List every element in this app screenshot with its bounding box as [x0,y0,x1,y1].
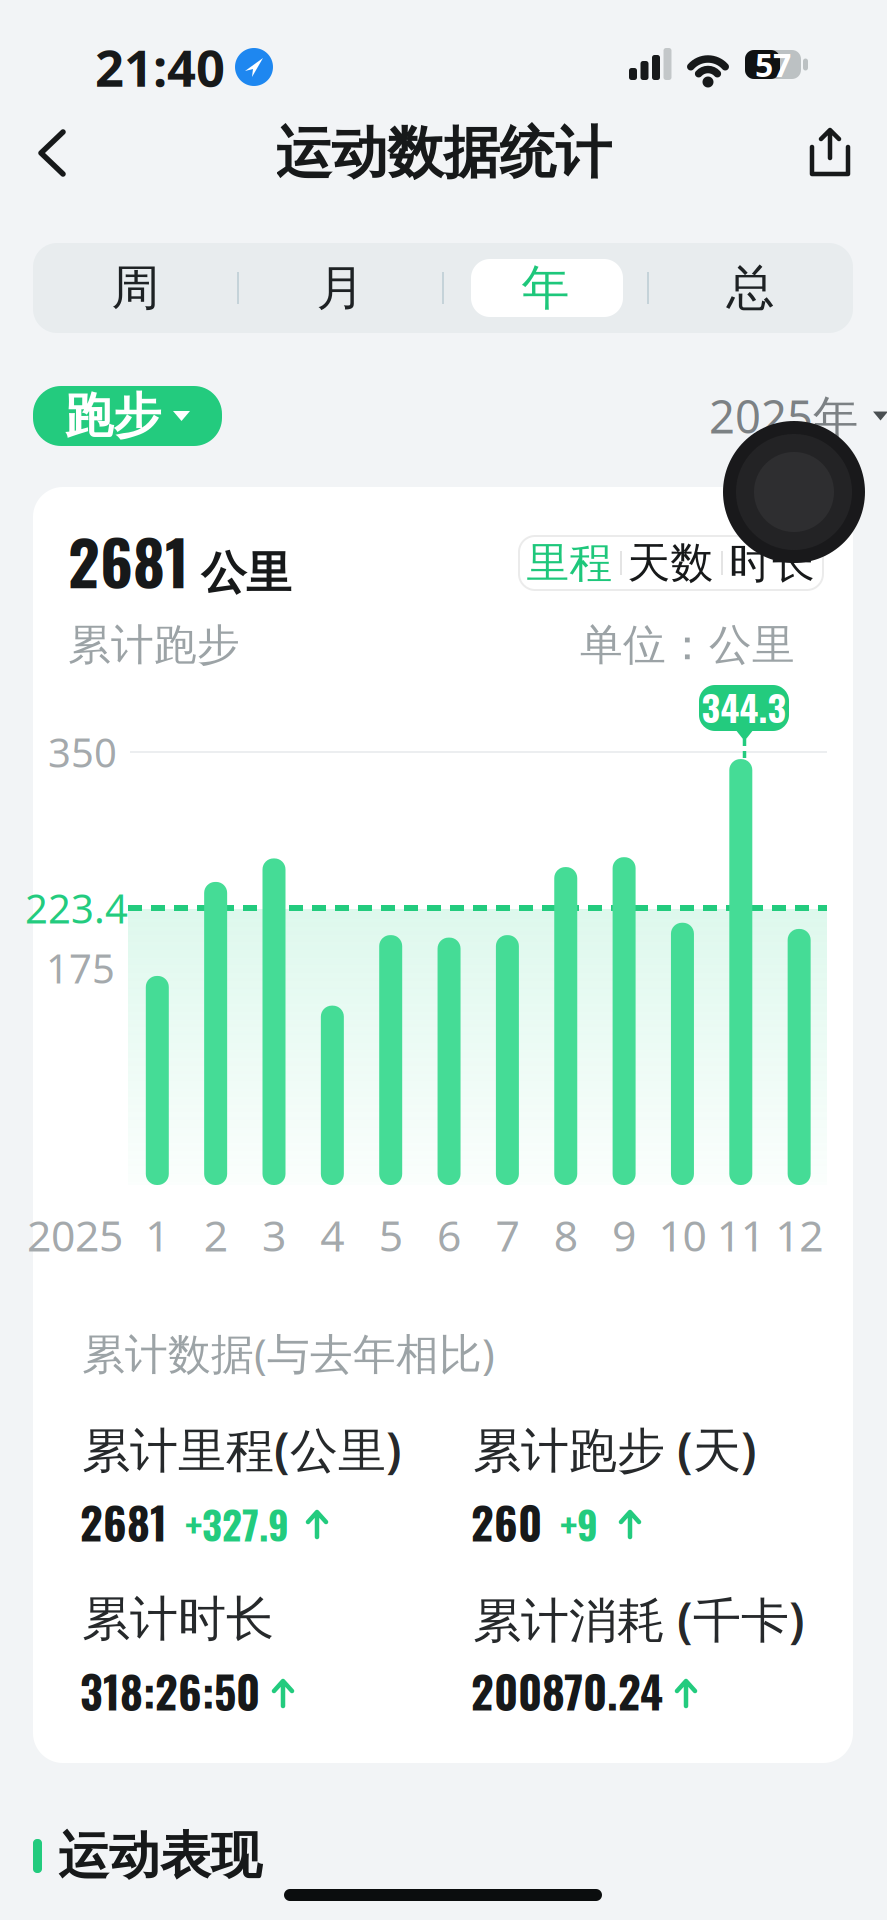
button[interactable]: 2025年 [709,386,887,446]
staticText: 运动数据统计 [275,118,611,188]
staticText: 1 [145,1206,169,1264]
staticText: 单位：公里 [580,618,795,672]
staticText: 3 [262,1206,286,1264]
staticText: 年 [521,258,569,318]
staticText: 318:26:50 [80,1658,260,1723]
staticText: 里程 [526,536,612,590]
staticText: +9 [560,1495,598,1553]
staticText: 总 [726,258,774,318]
staticText: 9 [612,1206,636,1264]
button[interactable]: 总 [648,243,853,333]
staticText: 时长 [729,536,815,590]
button[interactable]: 月 [238,243,443,333]
staticText: 350 [48,725,117,779]
staticText: 公里 [201,544,291,602]
staticText: 运动表现 [58,1824,262,1888]
staticText: 累计跑步 (天) [473,1416,757,1482]
staticText: 175 [46,941,115,995]
staticText: 2 [204,1206,228,1264]
staticText: 2681 [68,515,189,606]
staticText: 260 [471,1489,542,1554]
button[interactable]: 年 [443,243,648,333]
staticText: 月 [316,258,364,318]
staticText: 223.4 [25,881,128,935]
button[interactable]: 天数 [620,536,721,590]
staticText: 累计时长 [82,1589,274,1649]
staticText: 5 [379,1206,403,1264]
staticText: 7 [495,1206,519,1264]
staticText: 21:40 [95,32,225,101]
button[interactable]: 里程 [519,536,620,590]
staticText: 57 [755,43,791,86]
staticText: 累计跑步 [68,618,240,672]
staticText: 10 [658,1206,706,1264]
staticText: 200870.24 [471,1658,663,1723]
staticText: 2681 [80,1489,167,1554]
staticText: 11 [717,1206,765,1264]
button[interactable]: 跑步 [33,386,222,446]
button[interactable]: 周 [33,243,238,333]
staticText: 4 [320,1206,344,1264]
staticText: 天数 [627,536,713,590]
staticText: 跑步 [65,386,161,446]
staticText: 周 [111,258,159,318]
staticText: 12 [775,1206,823,1264]
staticText: 2025年 [709,385,858,447]
button[interactable]: 时长 [721,536,823,590]
button[interactable] [804,126,856,178]
staticText: 8 [554,1206,578,1264]
staticText: 累计里程(公里) [82,1416,402,1482]
staticText: +327.9 [185,1495,289,1553]
button[interactable] [723,421,865,563]
staticText: 累计消耗 (千卡) [473,1586,805,1652]
staticText: 6 [437,1206,461,1264]
staticText: 累计数据(与去年相比) [82,1324,495,1382]
staticText: 344.3 [701,680,786,733]
staticText: 2025 [27,1206,123,1264]
button[interactable] [33,127,85,179]
